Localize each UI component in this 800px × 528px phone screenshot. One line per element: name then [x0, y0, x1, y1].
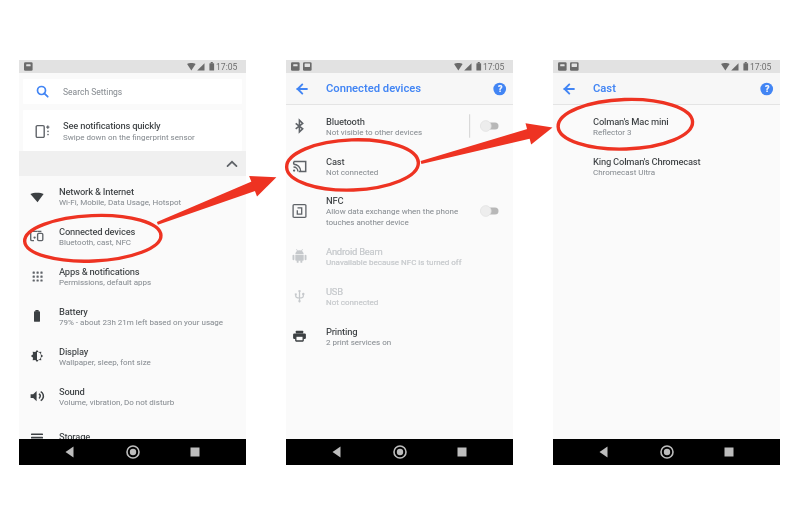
- staticText: Display: [59, 346, 89, 357]
- staticText: Connected devices: [59, 226, 136, 237]
- button[interactable]: Back: [556, 76, 582, 102]
- staticText: 79% - about 23h 21m left based on your u…: [59, 318, 224, 327]
- staticText: USB: [326, 286, 343, 297]
- button[interactable]: Colman's Mac mini: [553, 106, 780, 146]
- button[interactable]: Printing: [286, 316, 513, 356]
- staticText: Sound: [59, 386, 85, 397]
- button[interactable]: Recent apps: [716, 439, 742, 465]
- button[interactable]: Home: [654, 439, 680, 465]
- staticText: Printing: [326, 326, 358, 337]
- staticText: 17:05: [750, 62, 772, 72]
- button[interactable]: Back: [289, 76, 315, 102]
- button[interactable]: NFC: [286, 186, 513, 236]
- staticText: Network & Internet: [59, 186, 134, 197]
- staticText: Battery: [59, 306, 88, 317]
- button[interactable]: Storage: [19, 416, 246, 456]
- staticText: King Colman's Chromecast: [593, 156, 701, 167]
- staticText: Allow data exchange when the phone touch…: [326, 207, 459, 227]
- staticText: Cast: [326, 156, 345, 167]
- staticText: Bluetooth, cast, NFC: [59, 238, 132, 247]
- staticText: ?: [765, 84, 770, 95]
- button[interactable]: See notifications quickly: [23, 110, 242, 151]
- staticText: Chromecast Ultra: [593, 168, 655, 177]
- staticText: Colman's Mac mini: [593, 116, 669, 127]
- staticText: Wi-Fi, Mobile, Data Usage, Hotspot: [59, 198, 182, 207]
- button[interactable]: Recent apps: [182, 439, 208, 465]
- button[interactable]: Connected devices: [19, 216, 246, 256]
- staticText: Swipe down on the fingerprint sensor: [63, 133, 195, 142]
- button[interactable]: Back: [57, 439, 83, 465]
- staticText: Volume, vibration, Do not disturb: [59, 398, 175, 407]
- staticText: Connected devices: [326, 82, 422, 95]
- staticText: Bluetooth: [326, 116, 365, 127]
- button[interactable]: Display: [19, 336, 246, 376]
- button[interactable]: Home: [120, 439, 146, 465]
- button[interactable]: King Colman's Chromecast: [553, 146, 780, 186]
- staticText: Search Settings: [63, 87, 123, 97]
- staticText: Reflector 3: [593, 128, 632, 137]
- button[interactable]: Sound: [19, 376, 246, 416]
- staticText: Not visible to other devices: [326, 128, 423, 137]
- staticText: Android Beam: [326, 246, 383, 257]
- button[interactable]: Recent apps: [449, 439, 475, 465]
- button[interactable]: Bluetooth: [286, 106, 513, 146]
- button[interactable]: USB: [286, 276, 513, 316]
- button[interactable]: Help: [754, 76, 780, 102]
- button[interactable]: Home: [387, 439, 413, 465]
- button[interactable]: Cast: [286, 146, 513, 186]
- button[interactable]: Battery: [19, 296, 246, 336]
- staticText: Wallpaper, sleep, font size: [59, 358, 151, 367]
- staticText: Not connected: [326, 298, 379, 307]
- staticText: Unavailable because NFC is turned off: [326, 258, 462, 267]
- staticText: ?: [498, 84, 503, 95]
- staticText: Cast: [593, 82, 616, 95]
- button[interactable]: Android Beam: [286, 236, 513, 276]
- button[interactable]: Collapse suggestions: [19, 151, 246, 176]
- staticText: Apps & notifications: [59, 266, 140, 277]
- button[interactable]: Network & Internet: [19, 176, 246, 216]
- staticText: Not connected: [326, 168, 379, 177]
- button[interactable]: Search Settings: [23, 79, 242, 104]
- button[interactable]: Apps & notifications: [19, 256, 246, 296]
- staticText: Permissions, default apps: [59, 278, 152, 287]
- staticText: See notifications quickly: [63, 120, 161, 131]
- button[interactable]: Help: [487, 76, 513, 102]
- staticText: Storage: [59, 431, 91, 442]
- staticText: 17:05: [483, 62, 505, 72]
- button[interactable]: Back: [324, 439, 350, 465]
- button[interactable]: Back: [591, 439, 617, 465]
- staticText: 2 print services on: [326, 338, 392, 347]
- staticText: NFC: [326, 195, 344, 206]
- staticText: 17:05: [216, 62, 238, 72]
